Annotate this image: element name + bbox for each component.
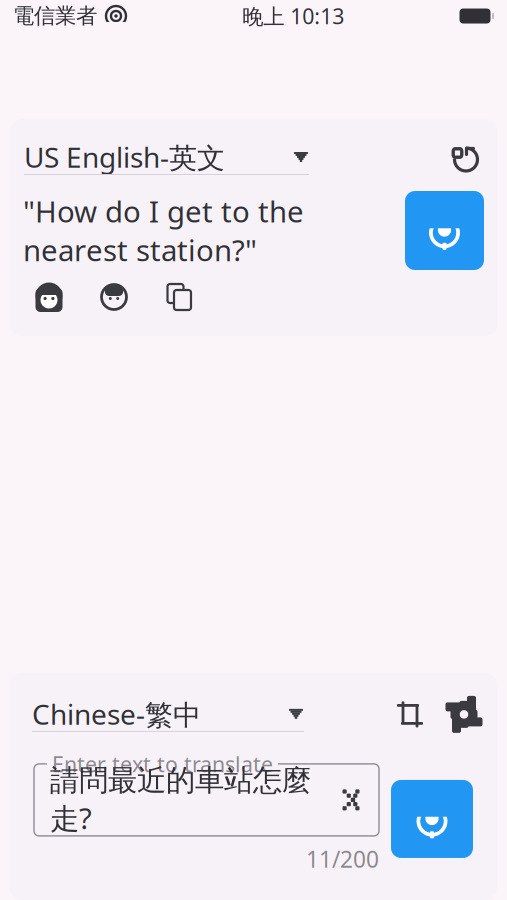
button[interactable]: Scan text with camera xyxy=(395,699,425,729)
button[interactable]: Male voice xyxy=(99,282,129,312)
staticText: 請問最近的車站怎麼走? xyxy=(50,762,311,837)
staticText: Chinese-繁中 xyxy=(32,695,201,732)
staticText: Enter text to translate xyxy=(52,750,273,778)
button[interactable]: US English-英文 xyxy=(24,140,309,175)
button[interactable]: Voice input xyxy=(391,780,473,858)
button[interactable]: Settings xyxy=(449,699,479,729)
button[interactable]: Swap languages xyxy=(449,142,479,172)
staticText: "How do I get to the nearest station?" xyxy=(23,191,304,269)
button[interactable]: Female voice xyxy=(34,282,64,312)
button[interactable]: Chinese-繁中 xyxy=(32,697,304,732)
button[interactable]: Copy translation xyxy=(164,282,194,312)
button[interactable]: Clear text xyxy=(339,786,367,814)
button[interactable]: Play translation xyxy=(405,191,484,270)
staticText: US English-英文 xyxy=(24,138,225,176)
staticText: 11/200 xyxy=(306,844,379,874)
staticText: 晚上 10:13 xyxy=(242,2,344,30)
staticText: 電信業者 xyxy=(13,3,97,29)
